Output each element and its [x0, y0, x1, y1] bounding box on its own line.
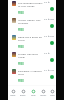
- staticText: FREE: [18, 62, 24, 66]
- staticText: 4.6 ★ 1.2K: [44, 1, 54, 4]
- button[interactable]: Play: [50, 41, 54, 45]
- button[interactable]: The Midnight Library of Lost Things: [8, 0, 56, 17]
- button[interactable]: Play: [50, 58, 54, 62]
- button[interactable]: Play: [50, 24, 54, 28]
- staticText: Educated: A Memoir Story: [18, 69, 43, 75]
- staticText: Books: [20, 94, 26, 97]
- button[interactable]: Project Hail Mary Novel: [8, 51, 56, 68]
- button[interactable]: Play: [50, 7, 54, 11]
- button[interactable]: Home: [8, 86, 18, 100]
- staticText: FREE: [18, 11, 24, 15]
- button[interactable]: Educated: A Memoir Story: [8, 68, 56, 85]
- staticText: 4.5 ★ 640: [44, 35, 54, 38]
- staticText: Home: [10, 94, 16, 97]
- button[interactable]: More: [48, 86, 56, 100]
- button[interactable]: Atomic Habits: Tiny Changes: [8, 17, 56, 34]
- button[interactable]: Deep Work Rules for Focus: [8, 34, 56, 51]
- staticText: Shop: [31, 94, 36, 97]
- staticText: Project Hail Mary Novel: [18, 52, 43, 58]
- staticText: 4.7 ★ 770: [44, 69, 54, 72]
- staticText: FREE: [18, 45, 24, 49]
- staticText: FREE: [18, 28, 24, 32]
- staticText: Library: [40, 94, 47, 97]
- button[interactable]: Books: [18, 86, 28, 100]
- staticText: 4.9 ★ 2.4K: [44, 52, 54, 55]
- staticText: 4.8 ★ 980: [44, 18, 54, 21]
- staticText: Deep Work Rules for Focus: [18, 35, 43, 41]
- staticText: Atomic Habits: Tiny Changes: [18, 18, 43, 24]
- staticText: FREE: [18, 79, 24, 83]
- button[interactable]: Play: [50, 75, 54, 79]
- staticText: The Midnight Library of Lost Things: [18, 1, 43, 7]
- staticText: More: [50, 94, 55, 97]
- button[interactable]: Library: [38, 86, 48, 100]
- button[interactable]: Shop: [28, 86, 38, 100]
